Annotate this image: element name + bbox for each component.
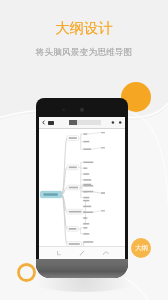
button[interactable]: Undo	[102, 249, 110, 257]
button[interactable]: More	[109, 117, 123, 128]
button[interactable]: Add node	[55, 249, 63, 257]
staticText: 大纲设计	[0, 19, 168, 37]
button[interactable]: Back	[41, 120, 46, 125]
button[interactable]: Edit	[78, 249, 86, 257]
button[interactable]: Document	[48, 121, 54, 125]
staticText: 将头脑风景变为思维导图	[0, 47, 168, 58]
button[interactable]: 大纲	[131, 238, 151, 258]
staticText: 大纲	[135, 244, 148, 252]
